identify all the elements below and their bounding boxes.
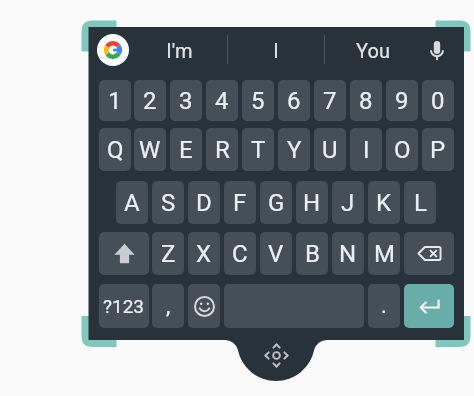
button[interactable]: O — [386, 128, 418, 171]
button[interactable]: C — [224, 232, 256, 275]
staticText: G — [268, 189, 285, 217]
button[interactable]: E — [170, 128, 202, 171]
staticText: E — [179, 136, 193, 164]
button[interactable]: H — [296, 181, 328, 224]
staticText: V — [268, 240, 284, 268]
staticText: J — [341, 189, 355, 217]
staticText: S — [161, 189, 176, 217]
button[interactable]: 9 — [386, 80, 418, 121]
button[interactable]: Backspace — [404, 232, 454, 275]
button[interactable]: K — [368, 181, 400, 224]
button[interactable]: Z — [152, 232, 184, 275]
button[interactable]: Emoji — [188, 284, 220, 328]
staticText: ?123 — [103, 295, 145, 317]
staticText: I — [363, 136, 370, 164]
staticText: O — [394, 136, 411, 164]
staticText: 6 — [287, 87, 301, 115]
staticText: T — [251, 136, 266, 164]
button[interactable]: 6 — [278, 80, 310, 121]
staticText: 5 — [251, 87, 265, 115]
button[interactable]: ?123 — [99, 284, 149, 328]
button[interactable]: 8 — [350, 80, 382, 121]
staticText: M — [374, 240, 395, 268]
button[interactable]: Google search — [97, 34, 129, 66]
button[interactable]: T — [242, 128, 274, 171]
button[interactable]: J — [332, 181, 364, 224]
staticText: K — [376, 189, 392, 217]
button[interactable]: I — [227, 27, 324, 73]
staticText: I — [273, 39, 279, 62]
button[interactable]: I — [350, 128, 382, 171]
staticText: H — [303, 189, 321, 217]
button[interactable]: 4 — [206, 80, 238, 121]
staticText: B — [305, 240, 320, 268]
button[interactable]: G — [260, 181, 292, 224]
button[interactable]: A — [116, 181, 148, 224]
button[interactable]: I'm — [131, 27, 228, 73]
button[interactable]: R — [206, 128, 238, 171]
button[interactable]: 0 — [422, 80, 454, 121]
button[interactable]: F — [224, 181, 256, 224]
button[interactable]: M — [368, 232, 400, 275]
staticText: Y — [287, 136, 302, 164]
button[interactable]: P — [422, 128, 454, 171]
staticText: L — [414, 189, 427, 217]
button[interactable]: Enter — [404, 284, 454, 328]
button[interactable]: . — [368, 284, 400, 328]
staticText: R — [215, 136, 230, 164]
button[interactable]: V — [260, 232, 292, 275]
staticText: P — [430, 136, 446, 164]
button[interactable]: B — [296, 232, 328, 275]
staticText: 9 — [395, 87, 409, 115]
staticText: Z — [161, 240, 176, 268]
staticText: A — [124, 189, 140, 217]
button[interactable]: 2 — [134, 80, 166, 121]
staticText: C — [232, 240, 248, 268]
button[interactable]: Shift — [99, 232, 149, 275]
staticText: F — [233, 189, 247, 217]
staticText: X — [196, 240, 212, 268]
button[interactable]: You — [324, 27, 421, 73]
button[interactable]: N — [332, 232, 364, 275]
staticText: 3 — [179, 87, 193, 115]
staticText: N — [339, 240, 357, 268]
button[interactable]: , — [152, 284, 184, 328]
button[interactable]: W — [134, 128, 166, 171]
staticText: 8 — [359, 87, 373, 115]
button[interactable]: L — [404, 181, 436, 224]
staticText: U — [322, 136, 338, 164]
button[interactable]: X — [188, 232, 220, 275]
button[interactable]: Move keyboard — [259, 338, 293, 372]
staticText: Q — [107, 136, 124, 164]
staticText: You — [356, 39, 390, 62]
staticText: . — [381, 293, 387, 319]
staticText: I'm — [166, 39, 193, 62]
button[interactable]: 7 — [314, 80, 346, 121]
button[interactable]: 5 — [242, 80, 274, 121]
staticText: 2 — [143, 87, 157, 115]
staticText: 0 — [431, 87, 445, 115]
button[interactable]: 3 — [170, 80, 202, 121]
staticText: 4 — [215, 87, 229, 115]
button[interactable]: S — [152, 181, 184, 224]
staticText: D — [196, 189, 212, 217]
staticText: 1 — [108, 87, 122, 115]
button[interactable]: U — [314, 128, 346, 171]
staticText: 7 — [323, 87, 337, 115]
button[interactable]: Q — [99, 128, 131, 171]
staticText: W — [139, 136, 161, 164]
button[interactable]: Voice input — [418, 31, 456, 69]
button[interactable]: Y — [278, 128, 310, 171]
staticText: , — [166, 293, 171, 319]
button[interactable]: 1 — [99, 80, 131, 121]
button[interactable]: D — [188, 181, 220, 224]
